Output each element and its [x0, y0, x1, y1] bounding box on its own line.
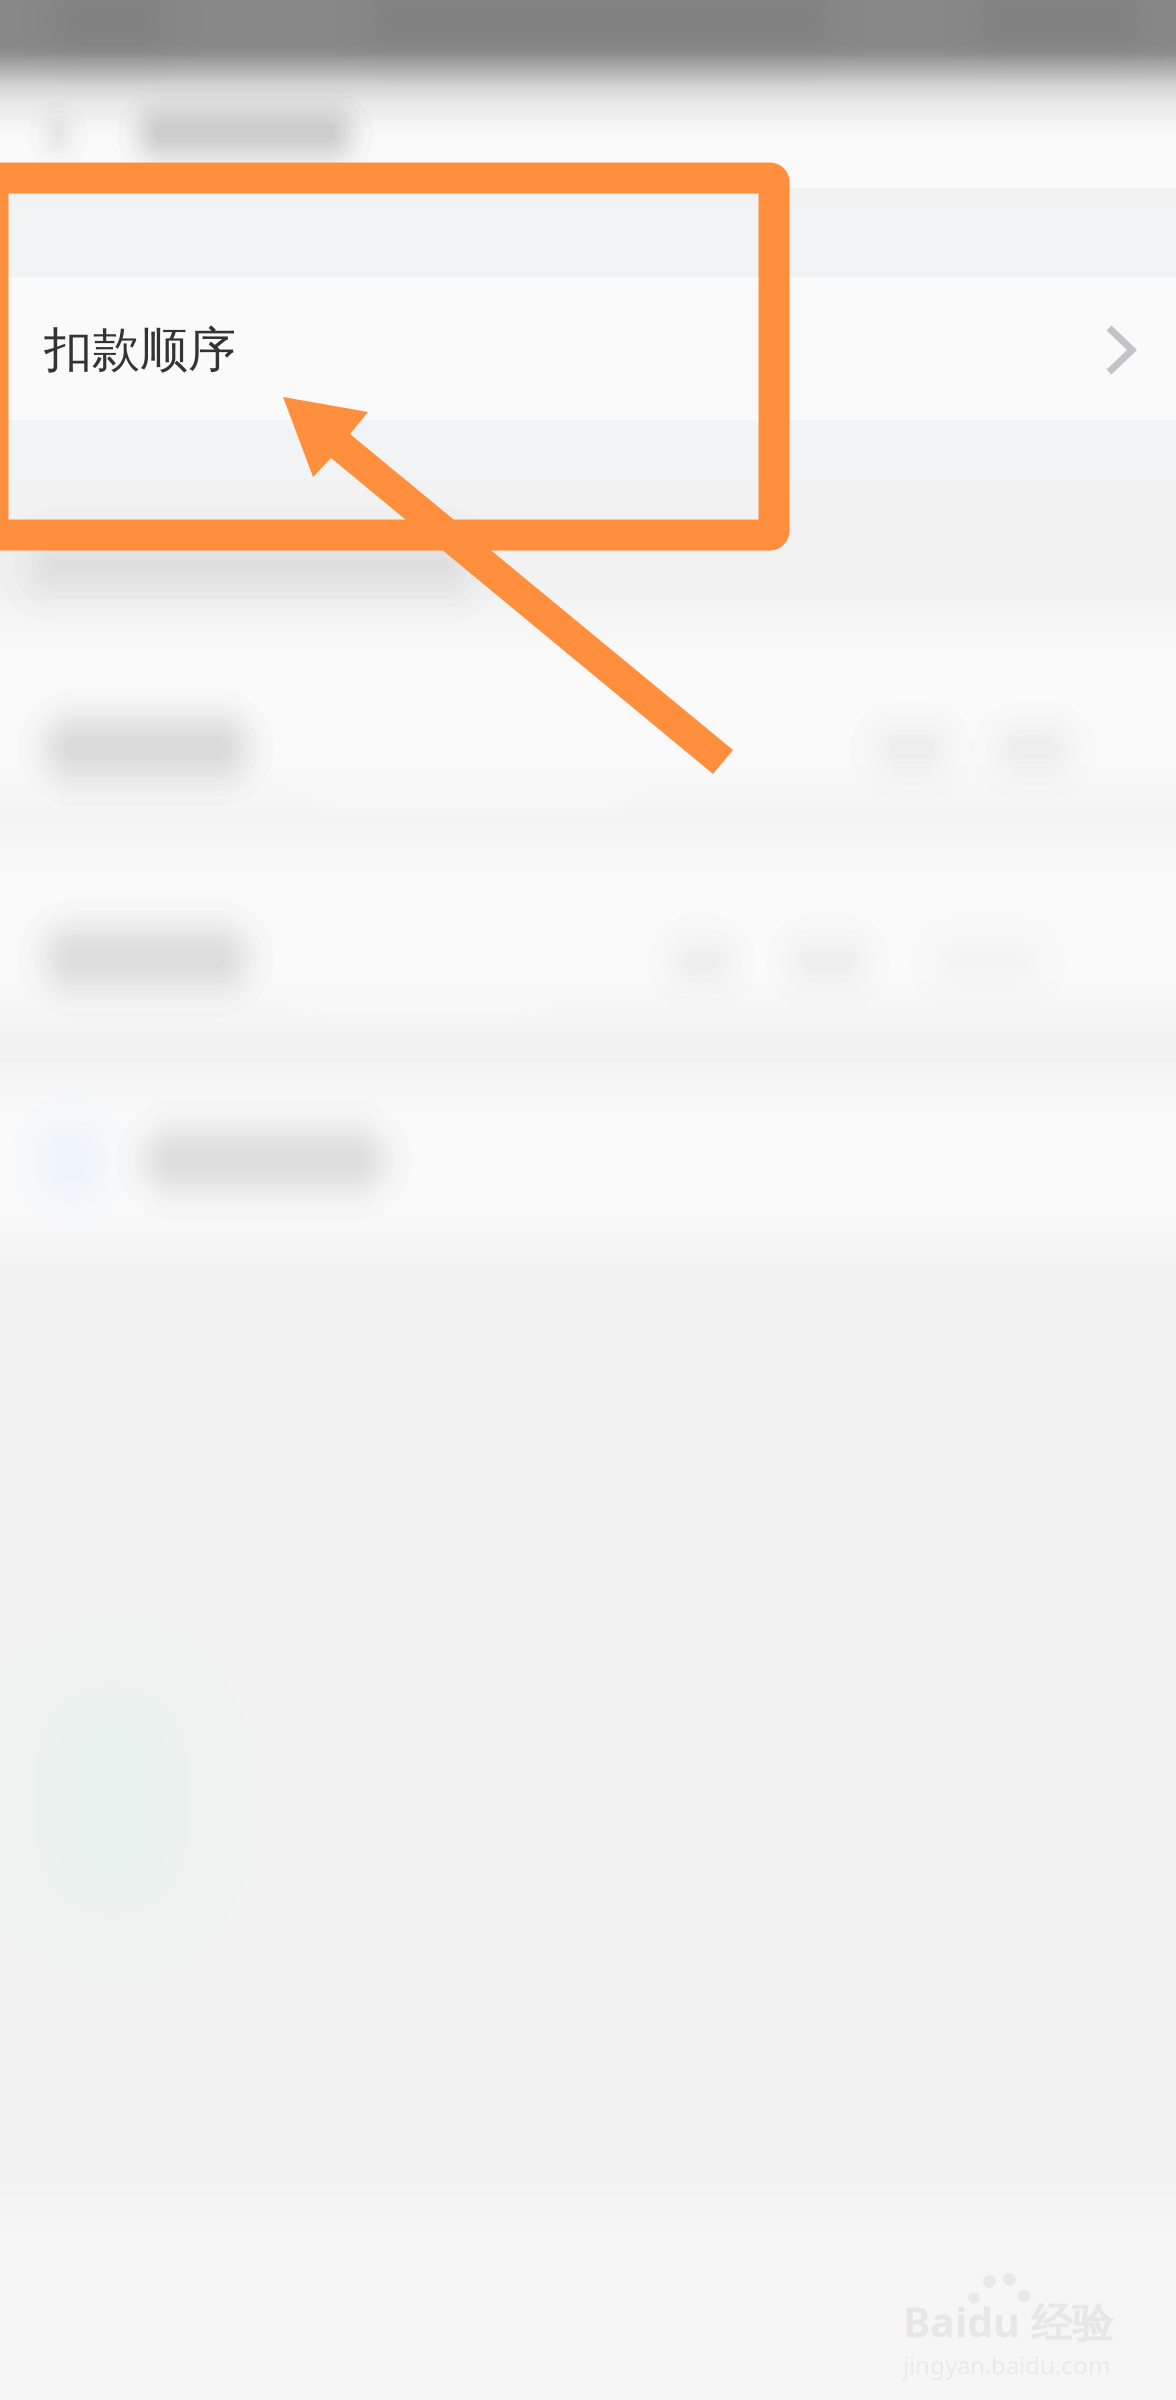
staticText: Baidu 经验 — [903, 2294, 1113, 2349]
button[interactable]: 扣款顺序 — [0, 280, 1176, 420]
button[interactable]: Back — [6, 83, 110, 187]
staticText: 扣款顺序 — [44, 320, 236, 379]
staticText: jingyan.baidu.com — [903, 2349, 1110, 2381]
